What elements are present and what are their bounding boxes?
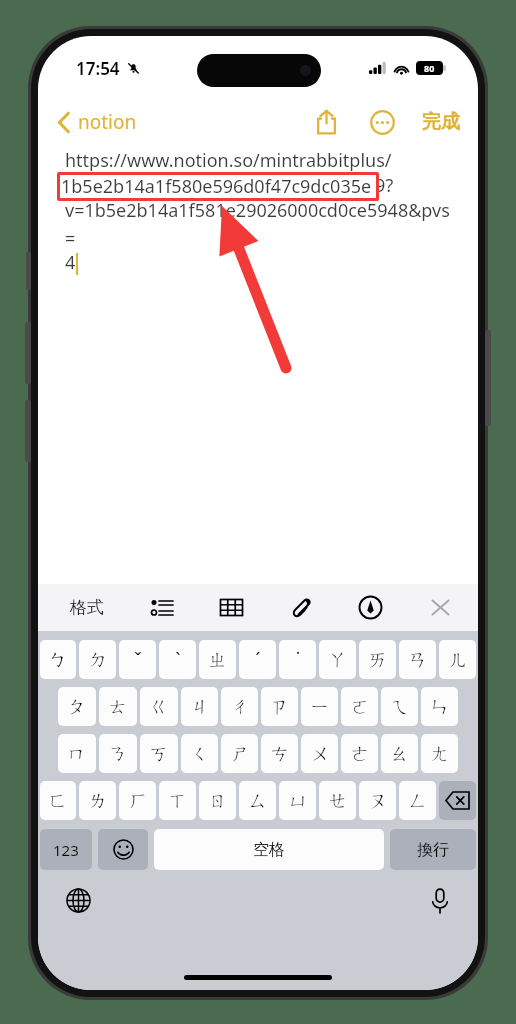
staticText: 格式	[70, 597, 104, 618]
button[interactable]: ㄅ	[40, 640, 76, 679]
staticText: ˙	[296, 647, 300, 673]
staticText: ㄨ	[310, 742, 330, 766]
staticText: 17:54	[76, 57, 120, 80]
button[interactable]: ㄎ	[140, 734, 178, 773]
staticText: ㄙ	[248, 789, 268, 813]
staticText: ㄘ	[270, 742, 290, 766]
button[interactable]: ㄑ	[181, 734, 218, 773]
button[interactable]: ㄌ	[79, 781, 116, 820]
button[interactable]: ㄚ	[319, 640, 356, 679]
staticText: ㄅ	[48, 648, 68, 672]
button[interactable]: 空格	[154, 829, 384, 870]
button[interactable]: ㄟ	[381, 687, 418, 726]
button[interactable]: ㄞ	[359, 640, 396, 679]
button[interactable]: Backspace	[439, 781, 476, 820]
staticText: ㄣ	[430, 695, 450, 719]
button[interactable]: ㄗ	[261, 687, 298, 726]
staticText: 1b5e2b14a1f580e596d0f47c9dc035e9	[61, 174, 377, 197]
staticText: ㄋ	[108, 742, 128, 766]
button[interactable]: ˋ	[159, 640, 196, 679]
button[interactable]: ㄒ	[159, 781, 196, 820]
button[interactable]: ㄥ	[399, 781, 436, 820]
button[interactable]: More options	[365, 105, 400, 140]
staticText: ㄡ	[368, 789, 388, 813]
button[interactable]: Table	[214, 590, 249, 625]
staticText: 123	[53, 840, 79, 860]
button[interactable]: ㄐ	[181, 687, 218, 726]
button[interactable]: ㄘ	[261, 734, 298, 773]
button[interactable]: ㄢ	[399, 640, 436, 679]
staticText: ㄉ	[88, 648, 108, 672]
button[interactable]: ㄊ	[99, 687, 137, 726]
button[interactable]: ㄙ	[239, 781, 276, 820]
button[interactable]: 換行	[390, 829, 476, 870]
button[interactable]: ㄋ	[99, 734, 137, 773]
button[interactable]: Attach file	[284, 590, 319, 625]
button[interactable]: ㄔ	[221, 687, 258, 726]
staticText: ㄩ	[288, 789, 308, 813]
staticText: 80	[424, 62, 435, 74]
staticText: 4	[65, 250, 76, 275]
button[interactable]: ㄕ	[221, 734, 258, 773]
button[interactable]: Close keyboard	[423, 590, 458, 625]
staticText: ㄏ	[128, 789, 148, 813]
staticText: ㄞ	[368, 648, 388, 672]
button[interactable]: ㄧ	[301, 687, 338, 726]
button[interactable]: ㄛ	[341, 687, 378, 726]
staticText: ㄠ	[390, 742, 410, 766]
button[interactable]: ˊ	[239, 640, 276, 679]
button[interactable]: ㄡ	[359, 781, 396, 820]
staticText: ㄧ	[310, 695, 330, 719]
button[interactable]: ㄈ	[40, 781, 76, 820]
staticText: ㄥ	[408, 789, 428, 813]
button[interactable]: ㄠ	[381, 734, 418, 773]
button[interactable]: ㄖ	[199, 781, 236, 820]
staticText: ㄦ	[448, 648, 468, 672]
button[interactable]: Markup	[353, 590, 388, 625]
button[interactable]: notion	[52, 104, 143, 140]
button[interactable]: Emoji	[98, 829, 148, 870]
button[interactable]: ㄝ	[319, 781, 356, 820]
button[interactable]: 完成	[418, 105, 464, 139]
staticText: v=1b5e2b14a1f581e29026000cd0ce5948&pvs=	[65, 198, 455, 250]
staticText: ㄤ	[430, 742, 450, 766]
button[interactable]: ㄍ	[140, 687, 178, 726]
staticText: ㄌ	[88, 789, 108, 813]
staticText: ㄗ	[270, 695, 290, 719]
staticText: notion	[78, 109, 137, 135]
button[interactable]: 123	[40, 829, 92, 870]
staticText: ˇ	[134, 647, 142, 673]
button[interactable]: ㄦ	[439, 640, 476, 679]
button[interactable]: ˇ	[119, 640, 156, 679]
button[interactable]: ˙	[279, 640, 316, 679]
button[interactable]: ㄤ	[421, 734, 458, 773]
button[interactable]: ㄆ	[58, 687, 96, 726]
button[interactable]: Dictation	[426, 884, 454, 918]
button[interactable]: Switch keyboard	[62, 884, 95, 917]
button[interactable]: ㄨ	[301, 734, 338, 773]
button[interactable]: ㄉ	[79, 640, 116, 679]
staticText: 換行	[417, 840, 449, 860]
staticText: ㄈ	[48, 789, 68, 813]
staticText: ㄛ	[350, 695, 370, 719]
button[interactable]: ㄣ	[421, 687, 458, 726]
staticText: ㄍ	[149, 695, 169, 719]
button[interactable]: ㄇ	[58, 734, 96, 773]
button[interactable]: Checklist	[145, 590, 180, 625]
button[interactable]: Share	[310, 103, 343, 141]
staticText: ㄓ	[208, 648, 228, 672]
staticText: ˊ	[255, 647, 261, 673]
staticText: ㄢ	[408, 648, 428, 672]
staticText: ㄜ	[350, 742, 370, 766]
staticText: ㄒ	[168, 789, 188, 813]
staticText: ㄝ	[328, 789, 348, 813]
staticText: ㄆ	[67, 695, 87, 719]
button[interactable]: ㄩ	[279, 781, 316, 820]
staticText: 1b5e2b14a1f580e596d0f47c9dc035e9?	[65, 173, 394, 198]
staticText: ˋ	[175, 647, 181, 673]
staticText: ㄑ	[190, 742, 210, 766]
button[interactable]: 格式	[64, 591, 110, 624]
button[interactable]: ㄜ	[341, 734, 378, 773]
button[interactable]: ㄏ	[119, 781, 156, 820]
button[interactable]: ㄓ	[199, 640, 236, 679]
